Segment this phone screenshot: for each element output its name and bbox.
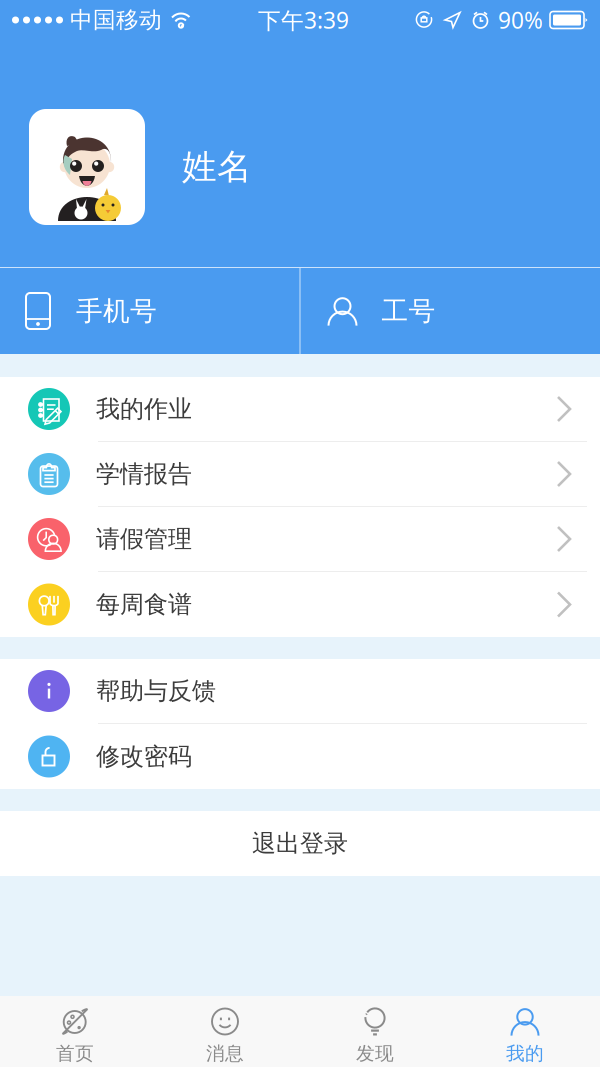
staticText: 中国移动 (70, 6, 162, 34)
staticText: 我的作业 (96, 394, 192, 424)
button[interactable]: 学情报告 (0, 442, 600, 507)
button[interactable]: 退出登录 (0, 811, 600, 876)
staticText: 手机号 (76, 295, 157, 327)
staticText: 每周食谱 (96, 590, 192, 619)
button[interactable]: 我的 (450, 996, 600, 1067)
button[interactable]: 帮助与反馈 (0, 659, 600, 724)
staticText: 修改密码 (96, 742, 192, 771)
staticText: 请假管理 (96, 524, 192, 554)
staticText: 90% (498, 5, 543, 35)
button[interactable]: 首页 (0, 996, 150, 1067)
button[interactable]: 请假管理 (0, 507, 600, 572)
button[interactable]: 消息 (150, 996, 300, 1067)
staticText: 消息 (206, 1042, 244, 1065)
staticText: 退出登录 (252, 829, 348, 858)
staticText: 下午3:39 (258, 5, 349, 35)
staticText: 姓名 (182, 146, 252, 188)
button[interactable]: 修改密码 (0, 724, 600, 789)
staticText: 我的 (506, 1042, 544, 1065)
button[interactable]: 每周食谱 (0, 572, 600, 637)
staticText: 学情报告 (96, 459, 192, 489)
button[interactable]: 工号 (300, 268, 600, 354)
staticText: 发现 (356, 1042, 394, 1065)
staticText: 帮助与反馈 (96, 676, 216, 706)
button[interactable]: 我的作业 (0, 377, 600, 442)
button[interactable]: 手机号 (0, 268, 299, 354)
staticText: 首页 (56, 1042, 94, 1065)
button[interactable]: 发现 (300, 996, 450, 1067)
staticText: 工号 (381, 295, 435, 327)
